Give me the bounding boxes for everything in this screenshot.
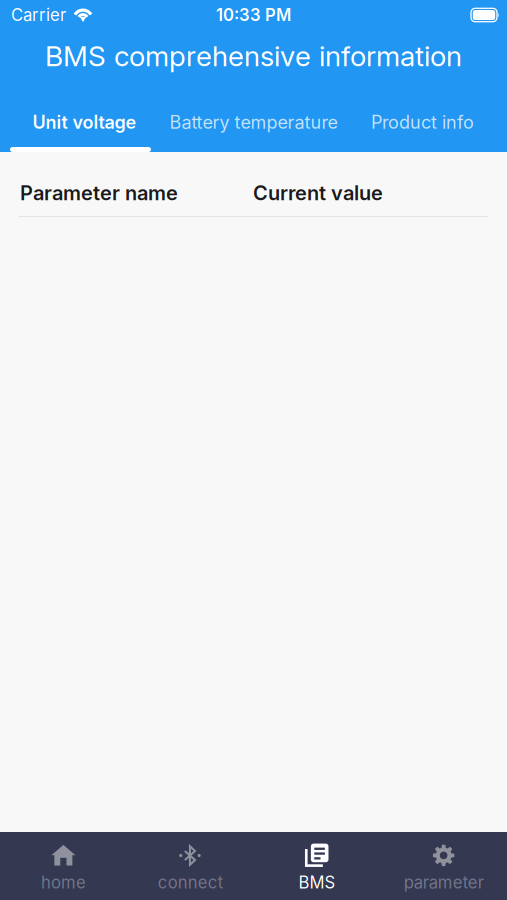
staticText: Product info [371,111,474,133]
staticText: 10:33 PM [216,5,291,25]
button[interactable]: parameter [380,829,507,900]
staticText: parameter [404,872,484,893]
button[interactable]: Product info [338,82,507,152]
button[interactable]: BMS [253,829,380,900]
staticText: Parameter name [20,181,178,205]
staticText: Current value [253,181,383,205]
button[interactable]: connect [127,829,254,900]
button[interactable]: Unit voltage [0,82,169,152]
staticText: Unit voltage [32,111,136,133]
staticText: home [41,872,86,893]
staticText: Battery temperature [169,111,337,133]
staticText: BMS [298,872,335,893]
button[interactable]: home [0,829,127,900]
staticText: BMS comprehensive information [45,39,462,73]
staticText: Carrier [11,5,66,25]
button[interactable]: Battery temperature [169,82,338,152]
staticText: connect [158,872,223,893]
